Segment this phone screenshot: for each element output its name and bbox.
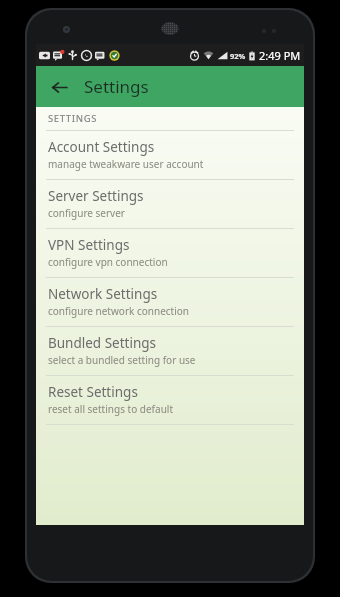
button[interactable]: Reset Settings [36,376,304,424]
staticText: configure vpn connection [48,255,168,269]
staticText: Reset Settings [48,383,138,401]
staticText: configure server [48,206,125,220]
staticText: reset all settings to default [48,402,173,416]
button[interactable]: Bundled Settings [36,327,304,375]
staticText: select a bundled setting for use [48,353,196,367]
staticText: configure network connection [48,304,190,318]
staticText: Account Settings [48,138,155,156]
staticText: manage tweakware user account [48,157,204,171]
button[interactable]: Network Settings [36,278,304,326]
staticText: 2:49 PM [259,48,301,63]
button[interactable]: Server Settings [36,180,304,228]
staticText: Bundled Settings [48,334,157,352]
staticText: 92% [230,51,246,61]
staticText: Server Settings [48,187,144,205]
staticText: VPN Settings [48,236,130,254]
button[interactable]: VPN Settings [36,229,304,277]
staticText: Network Settings [48,285,158,303]
button[interactable]: Navigate up [42,70,76,104]
staticText: SETTINGS [48,112,98,125]
button[interactable]: Account Settings [36,131,304,179]
staticText: Settings [84,75,149,98]
